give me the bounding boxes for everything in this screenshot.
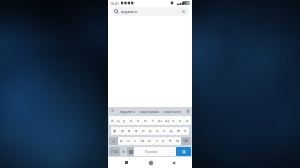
staticText: д [170,128,173,134]
button[interactable]: ы [119,127,126,135]
staticText: ж [177,128,181,134]
button[interactable]: ч [125,137,132,145]
staticText: . [172,149,174,154]
staticText: идея дома [140,109,159,114]
staticText: я [120,138,123,144]
button[interactable]: Back [168,157,179,168]
button[interactable]: э [182,127,189,135]
button[interactable]: ?123 [109,147,120,156]
staticText: ⌫ [183,139,189,143]
button[interactable]: Recents [121,157,132,168]
button[interactable]: л [161,127,168,135]
button[interactable]: ю [174,137,181,145]
staticText: ⇧ [112,139,116,144]
staticText: вдумать [121,9,138,14]
staticText: е [137,118,140,124]
button[interactable]: ш [156,116,163,125]
button[interactable]: ж [175,127,182,135]
staticText: ц [117,118,120,124]
button[interactable]: п [140,127,147,135]
staticText: й [111,118,114,124]
staticText: ?123 [111,150,118,154]
staticText: х [179,118,182,124]
staticText: ч [127,138,130,144]
staticText: вдумать [120,109,135,114]
staticText: б [169,138,172,144]
staticText: п [142,128,145,134]
button[interactable]: а [133,127,140,135]
staticText: а [135,128,138,134]
button[interactable]: Search [176,147,191,156]
staticText: м [141,138,145,144]
button[interactable]: у [121,116,128,125]
staticText: л [163,128,166,134]
button[interactable]: Emoji [127,147,134,156]
staticText: ь [162,138,165,144]
button[interactable]: . [169,147,176,156]
button[interactable]: вдумать [116,107,138,115]
staticText: идея мне [164,109,181,114]
staticText: з [172,118,175,124]
staticText: р [149,128,152,134]
button[interactable]: х [177,116,184,125]
button[interactable]: д [168,127,175,135]
button[interactable]: Clipboard [109,107,116,115]
staticText: щ [165,118,169,124]
button[interactable]: б [167,137,174,145]
button[interactable]: с [132,137,139,145]
button[interactable]: н [142,116,149,125]
button[interactable]: щ [163,116,170,125]
button[interactable]: в [126,127,133,135]
staticText: ы [121,128,125,134]
button[interactable]: Clear search [181,9,186,14]
button[interactable]: Shift [109,137,118,145]
staticText: в [128,128,131,134]
staticText: ю [176,138,180,144]
button[interactable]: ф [111,127,119,135]
button[interactable]: е [135,116,142,125]
staticText: Русский [145,150,158,154]
button[interactable]: з [170,116,177,125]
staticText: ъ [186,118,189,124]
button[interactable]: Voice input [184,107,191,115]
staticText: и [148,138,151,144]
button[interactable]: Settings [120,146,127,157]
button[interactable]: ъ [184,116,191,125]
staticText: ⚙ [122,150,126,154]
button[interactable]: и [146,137,153,145]
button[interactable]: идея мне [161,107,184,115]
button[interactable]: т [153,137,160,145]
button[interactable]: Home [145,157,156,168]
staticText: о [156,128,159,134]
staticText: г [152,118,154,124]
button[interactable]: я [118,137,125,145]
staticText: ф [113,128,117,134]
button[interactable]: р [147,127,154,135]
staticText: н [144,118,147,124]
staticText: э [184,128,187,134]
staticText: 16:41 [110,1,119,6]
staticText: к [130,118,133,124]
button[interactable]: о [154,127,161,135]
staticText: ш [158,118,162,124]
button[interactable]: ь [160,137,167,145]
button[interactable]: Русский [134,147,169,156]
button[interactable]: идея дома [138,107,161,115]
button[interactable]: м [139,137,146,145]
button[interactable]: й [109,116,115,125]
staticText: у [123,118,126,124]
staticText: с [134,138,137,144]
staticText: ☰ [111,109,115,113]
button[interactable]: ц [115,116,121,125]
staticText: т [156,138,158,144]
button[interactable]: вдумать [111,7,189,16]
button[interactable]: к [128,116,135,125]
button[interactable]: г [149,116,156,125]
button[interactable]: Backspace [181,137,191,145]
